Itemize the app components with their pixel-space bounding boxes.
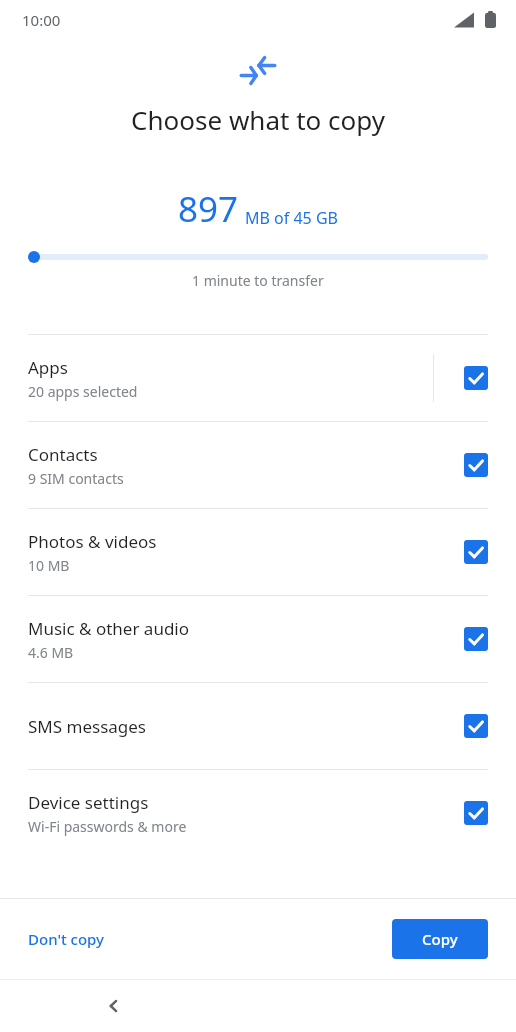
staticText: Apps [28,356,68,379]
button[interactable] [464,366,488,390]
button[interactable]: Back [92,984,136,1028]
button[interactable] [464,627,488,651]
staticText: Wi-Fi passwords & more [28,817,187,836]
button[interactable]: Apps [0,335,516,421]
button[interactable] [464,714,488,738]
staticText: Photos & videos [28,530,157,553]
staticText: MB of 45 GB [245,207,338,229]
staticText: Device settings [28,791,149,814]
button[interactable]: Photos & videos [0,509,516,595]
staticText: 1 minute to transfer [192,271,324,290]
staticText: 9 SIM contacts [28,469,124,488]
button[interactable] [464,453,488,477]
button[interactable]: Music & other audio [0,596,516,682]
staticText: Choose what to copy [131,102,385,137]
staticText: 10 MB [28,556,70,575]
staticText: Music & other audio [28,617,190,640]
staticText: Don't copy [28,929,105,949]
staticText: Contacts [28,443,98,466]
button[interactable]: Copy [392,919,488,959]
staticText: 10:00 [22,10,61,30]
button[interactable]: Contacts [0,422,516,508]
staticText: Copy [422,929,458,949]
button[interactable]: Device settings [0,770,516,856]
button[interactable]: SMS messages [0,683,516,769]
staticText: 4.6 MB [28,643,74,662]
button[interactable] [464,801,488,825]
staticText: 20 apps selected [28,382,138,401]
button[interactable] [464,540,488,564]
staticText: SMS messages [28,715,146,738]
staticText: 897 [178,185,239,233]
button[interactable]: Don't copy [14,919,119,959]
